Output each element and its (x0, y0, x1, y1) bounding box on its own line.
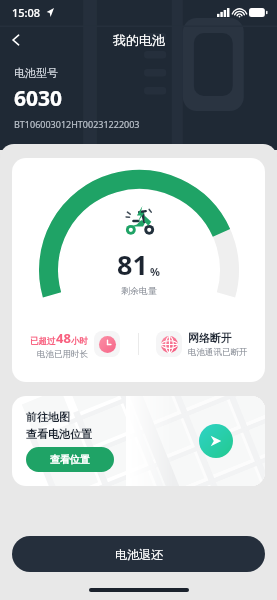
button[interactable]: 电池退还 (12, 536, 265, 572)
button[interactable]: 查看位置 (26, 447, 114, 472)
staticText: 前往地图 (26, 410, 70, 424)
staticText: 剩余电量 (121, 285, 157, 296)
staticText: 查看位置 (50, 453, 90, 466)
staticText: 81 (117, 246, 148, 283)
staticText: 我的电池 (113, 32, 165, 48)
staticText: 6030 (14, 84, 63, 113)
staticText: 小时 (71, 336, 88, 347)
staticText: 电池已用时长 (37, 349, 88, 360)
button[interactable]: 已超过 (12, 324, 138, 364)
button[interactable]: Back (0, 24, 32, 56)
staticText: BT106003012HT00231222003 (14, 118, 140, 130)
staticText: 网络断开 (188, 331, 232, 345)
button[interactable]: 前往地图 (12, 396, 265, 486)
staticText: 查看电池位置 (26, 427, 92, 441)
staticText: 电池通讯已断开 (188, 347, 248, 358)
staticText: 15:08 (12, 5, 41, 20)
button[interactable]: 网络断开 (139, 324, 265, 364)
staticText: 48 (56, 329, 71, 347)
staticText: 已超过 (30, 336, 56, 347)
staticText: 电池型号 (14, 66, 58, 80)
staticText: 电池退还 (115, 547, 163, 562)
staticText: % (150, 264, 160, 279)
